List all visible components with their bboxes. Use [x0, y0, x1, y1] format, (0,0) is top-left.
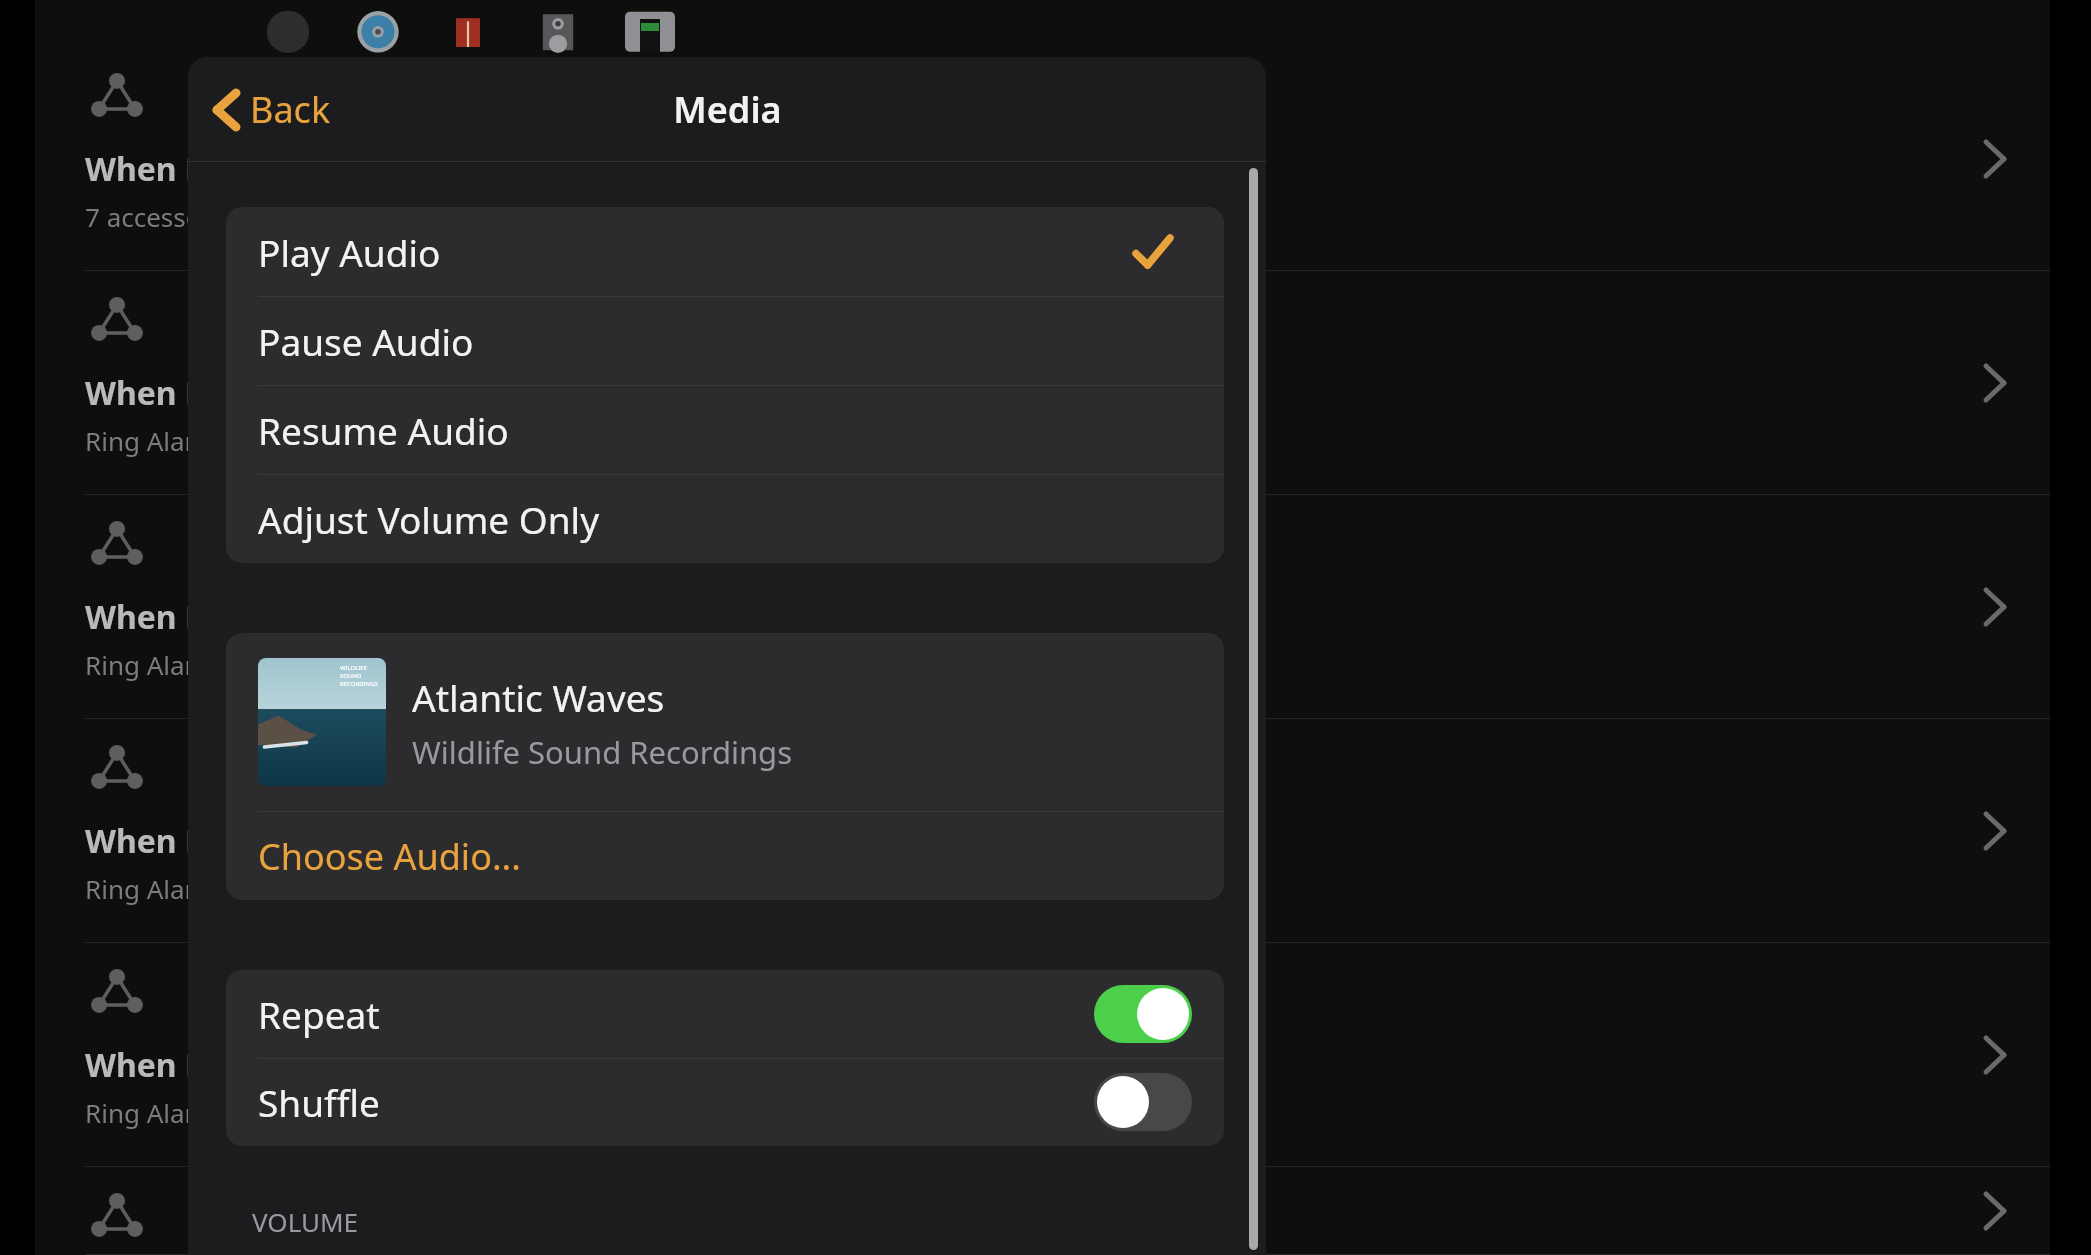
staticText: 7 accesso	[85, 199, 202, 234]
button[interactable]: When M	[35, 271, 2050, 495]
button[interactable]: When M	[35, 47, 2050, 271]
button[interactable]: Shuffle	[1094, 1073, 1192, 1131]
button[interactable]: Choose Audio...	[226, 812, 1224, 900]
staticText: When M	[85, 1043, 216, 1087]
other: Open	[1984, 364, 2006, 402]
staticText: Ring Alar	[85, 871, 196, 906]
staticText: Atlantic Waves	[412, 672, 665, 722]
staticText: When M	[85, 371, 216, 415]
button[interactable]: Shuffle	[226, 1058, 1224, 1146]
button[interactable]: Pause Audio	[226, 296, 1224, 385]
staticText: Choose Audio...	[258, 832, 521, 881]
button[interactable]: Adjust Volume Only	[226, 474, 1224, 563]
staticText: Back	[250, 85, 331, 134]
staticText: Ring Alar	[85, 647, 196, 682]
staticText: Play Audio	[258, 227, 441, 277]
button[interactable]: Repeat	[226, 970, 1224, 1058]
staticText: Pause Audio	[258, 316, 474, 366]
staticText: WILDLIFE	[340, 664, 367, 672]
staticText: Wildlife Sound Recordings	[412, 731, 793, 773]
button[interactable]: When M	[35, 719, 2050, 943]
staticText: Ring Alar	[85, 423, 196, 458]
staticText: Repeat	[258, 989, 380, 1039]
other: Open	[1984, 588, 2006, 626]
button[interactable]: When M	[35, 495, 2050, 719]
staticText: Ring Alar	[85, 1095, 196, 1130]
staticText: When M	[85, 819, 216, 863]
other: Open	[1984, 1036, 2006, 1074]
button[interactable]: Play Audio	[226, 207, 1224, 296]
button[interactable]: Repeat	[1094, 985, 1192, 1043]
button[interactable]: When M	[35, 1167, 2050, 1255]
staticText: Adjust Volume Only	[258, 494, 600, 544]
button[interactable]: When M	[35, 943, 2050, 1167]
staticText: Media	[673, 85, 782, 134]
other: Open	[1984, 1192, 2006, 1230]
staticText: VOLUME	[252, 1204, 359, 1239]
staticText: RECORDINGS	[340, 680, 378, 688]
staticText: Resume Audio	[258, 405, 509, 455]
button[interactable]: WILDLIFE	[226, 633, 1224, 811]
button[interactable]: Resume Audio	[226, 385, 1224, 474]
staticText: Shuffle	[258, 1077, 380, 1127]
button[interactable]: Back	[206, 77, 339, 142]
other: Selected	[1134, 236, 1172, 268]
other: Open	[1984, 140, 2006, 178]
staticText: When M	[85, 147, 216, 191]
other: Open	[1984, 812, 2006, 850]
staticText: When M	[85, 595, 216, 639]
staticText: SOUND	[340, 672, 362, 680]
